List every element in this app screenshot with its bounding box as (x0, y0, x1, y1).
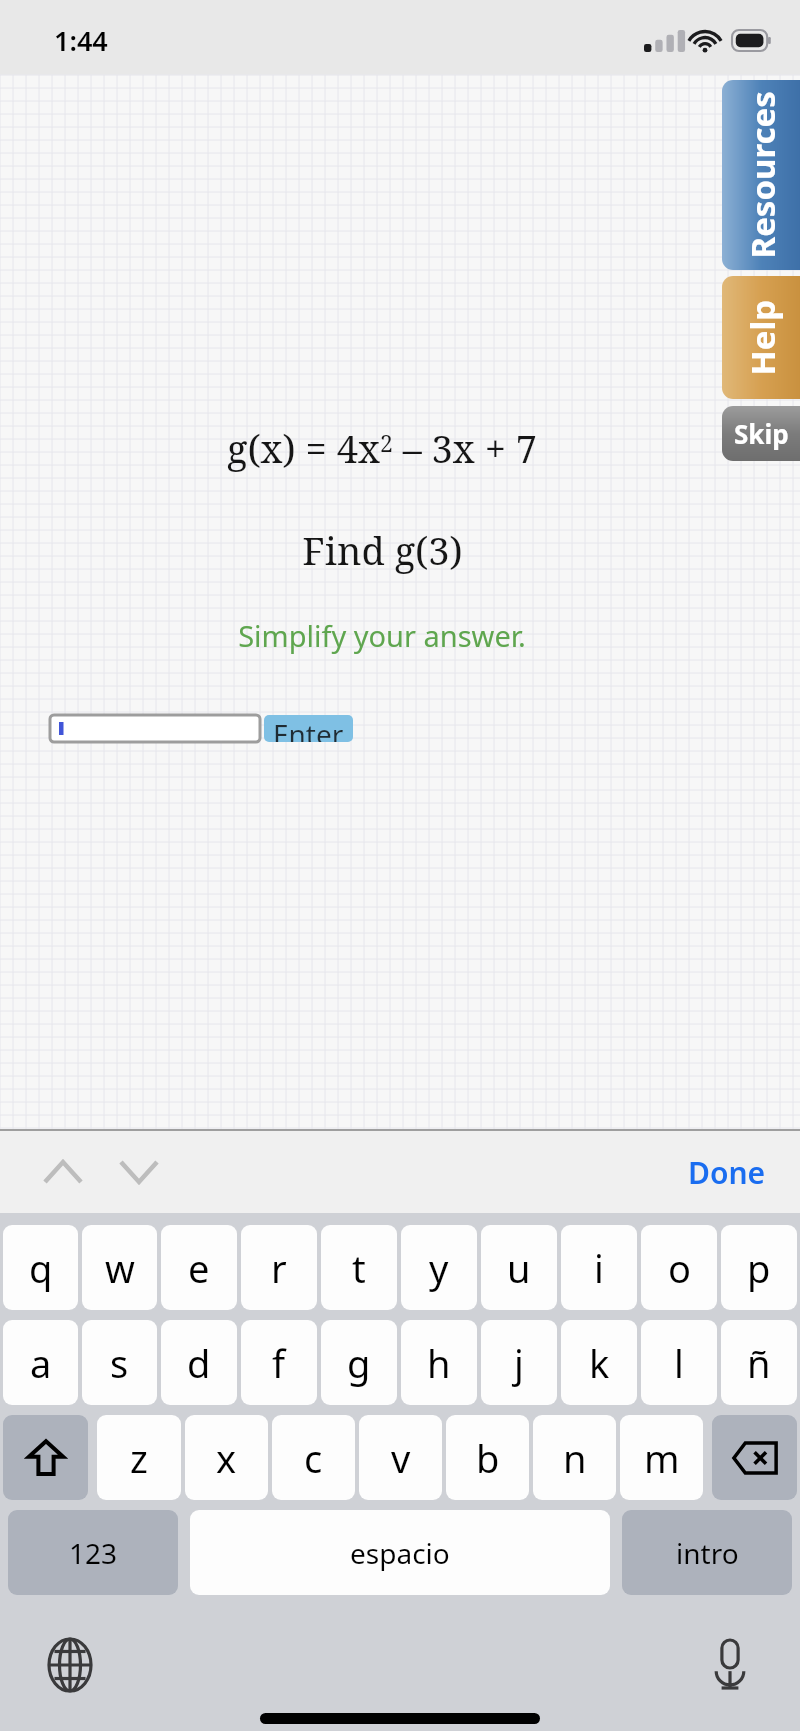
button[interactable]: z (97, 1415, 181, 1500)
staticText: u (507, 1242, 531, 1294)
staticText: i (594, 1242, 604, 1294)
button[interactable]: s (82, 1320, 157, 1405)
staticText: 1:44 (54, 22, 108, 59)
button[interactable]: espacio (190, 1510, 610, 1595)
staticText: a (30, 1337, 52, 1389)
button[interactable]: e (161, 1225, 237, 1310)
staticText: 123 (69, 1534, 118, 1572)
staticText: h (427, 1337, 451, 1389)
staticText: Help (739, 299, 784, 375)
staticText: z (130, 1432, 148, 1484)
staticText: x (216, 1432, 237, 1484)
button[interactable]: Change keyboard language (38, 1633, 102, 1697)
staticText: k (589, 1337, 610, 1389)
staticText: g (347, 1337, 371, 1389)
staticText: d (187, 1337, 211, 1389)
button[interactable]: Shift (3, 1415, 88, 1500)
staticText: t (352, 1242, 366, 1294)
button[interactable]: i (561, 1225, 637, 1310)
button[interactable]: Skip (722, 406, 800, 461)
button[interactable]: q (3, 1225, 78, 1310)
button[interactable]: ñ (721, 1320, 797, 1405)
staticText: e (188, 1242, 210, 1294)
button[interactable]: Previous field (30, 1142, 96, 1202)
button[interactable]: o (641, 1225, 717, 1310)
button[interactable]: p (721, 1225, 797, 1310)
staticText: o (668, 1242, 691, 1294)
button[interactable]: w (82, 1225, 157, 1310)
button[interactable]: u (481, 1225, 557, 1310)
staticText: intro (676, 1534, 739, 1572)
button[interactable]: b (446, 1415, 529, 1500)
staticText: p (747, 1242, 771, 1294)
staticText: m (644, 1432, 680, 1484)
button[interactable]: c (272, 1415, 355, 1500)
button[interactable]: a (3, 1320, 78, 1405)
button[interactable]: Help (722, 276, 800, 399)
button[interactable]: y (401, 1225, 477, 1310)
button[interactable]: j (481, 1320, 557, 1405)
button[interactable]: Resources (722, 80, 800, 270)
button[interactable]: d (161, 1320, 237, 1405)
staticText: w (105, 1242, 135, 1294)
staticText: s (110, 1337, 129, 1389)
staticText: l (674, 1337, 684, 1389)
button[interactable]: l (641, 1320, 717, 1405)
staticText: Done (688, 1152, 766, 1193)
button[interactable]: g (321, 1320, 397, 1405)
button[interactable]: r (241, 1225, 317, 1310)
button[interactable]: Next field (106, 1142, 172, 1202)
staticText: y (429, 1242, 449, 1294)
button[interactable]: Enter (264, 715, 353, 742)
button[interactable]: Dictate (698, 1633, 762, 1697)
staticText: n (563, 1432, 587, 1484)
staticText: Resources (739, 90, 784, 258)
button[interactable]: h (401, 1320, 477, 1405)
button[interactable]: Backspace (712, 1415, 797, 1500)
button[interactable]: k (561, 1320, 637, 1405)
staticText: v (391, 1432, 411, 1484)
staticText: j (514, 1337, 524, 1389)
staticText: c (304, 1432, 323, 1484)
staticText: Skip (734, 416, 789, 451)
button[interactable]: f (241, 1320, 317, 1405)
staticText: ñ (747, 1337, 771, 1389)
button[interactable]: v (359, 1415, 442, 1500)
button[interactable]: 123 (8, 1510, 178, 1595)
button[interactable]: intro (622, 1510, 792, 1595)
button[interactable]: m (620, 1415, 703, 1500)
staticText: espacio (350, 1534, 450, 1572)
button[interactable]: n (533, 1415, 616, 1500)
button[interactable]: x (185, 1415, 268, 1500)
button[interactable]: Done (678, 1144, 776, 1201)
staticText: g(x) = 4x2 – 3x + 7 (227, 422, 537, 474)
staticText: Find g(3) (302, 524, 463, 576)
staticText: Simplify your answer. (238, 616, 526, 655)
staticText: b (476, 1432, 500, 1484)
staticText: r (271, 1242, 287, 1294)
staticText: q (29, 1242, 53, 1294)
staticText: Enter (273, 715, 344, 742)
button[interactable] (50, 715, 260, 742)
button[interactable]: t (321, 1225, 397, 1310)
staticText: f (272, 1337, 286, 1389)
